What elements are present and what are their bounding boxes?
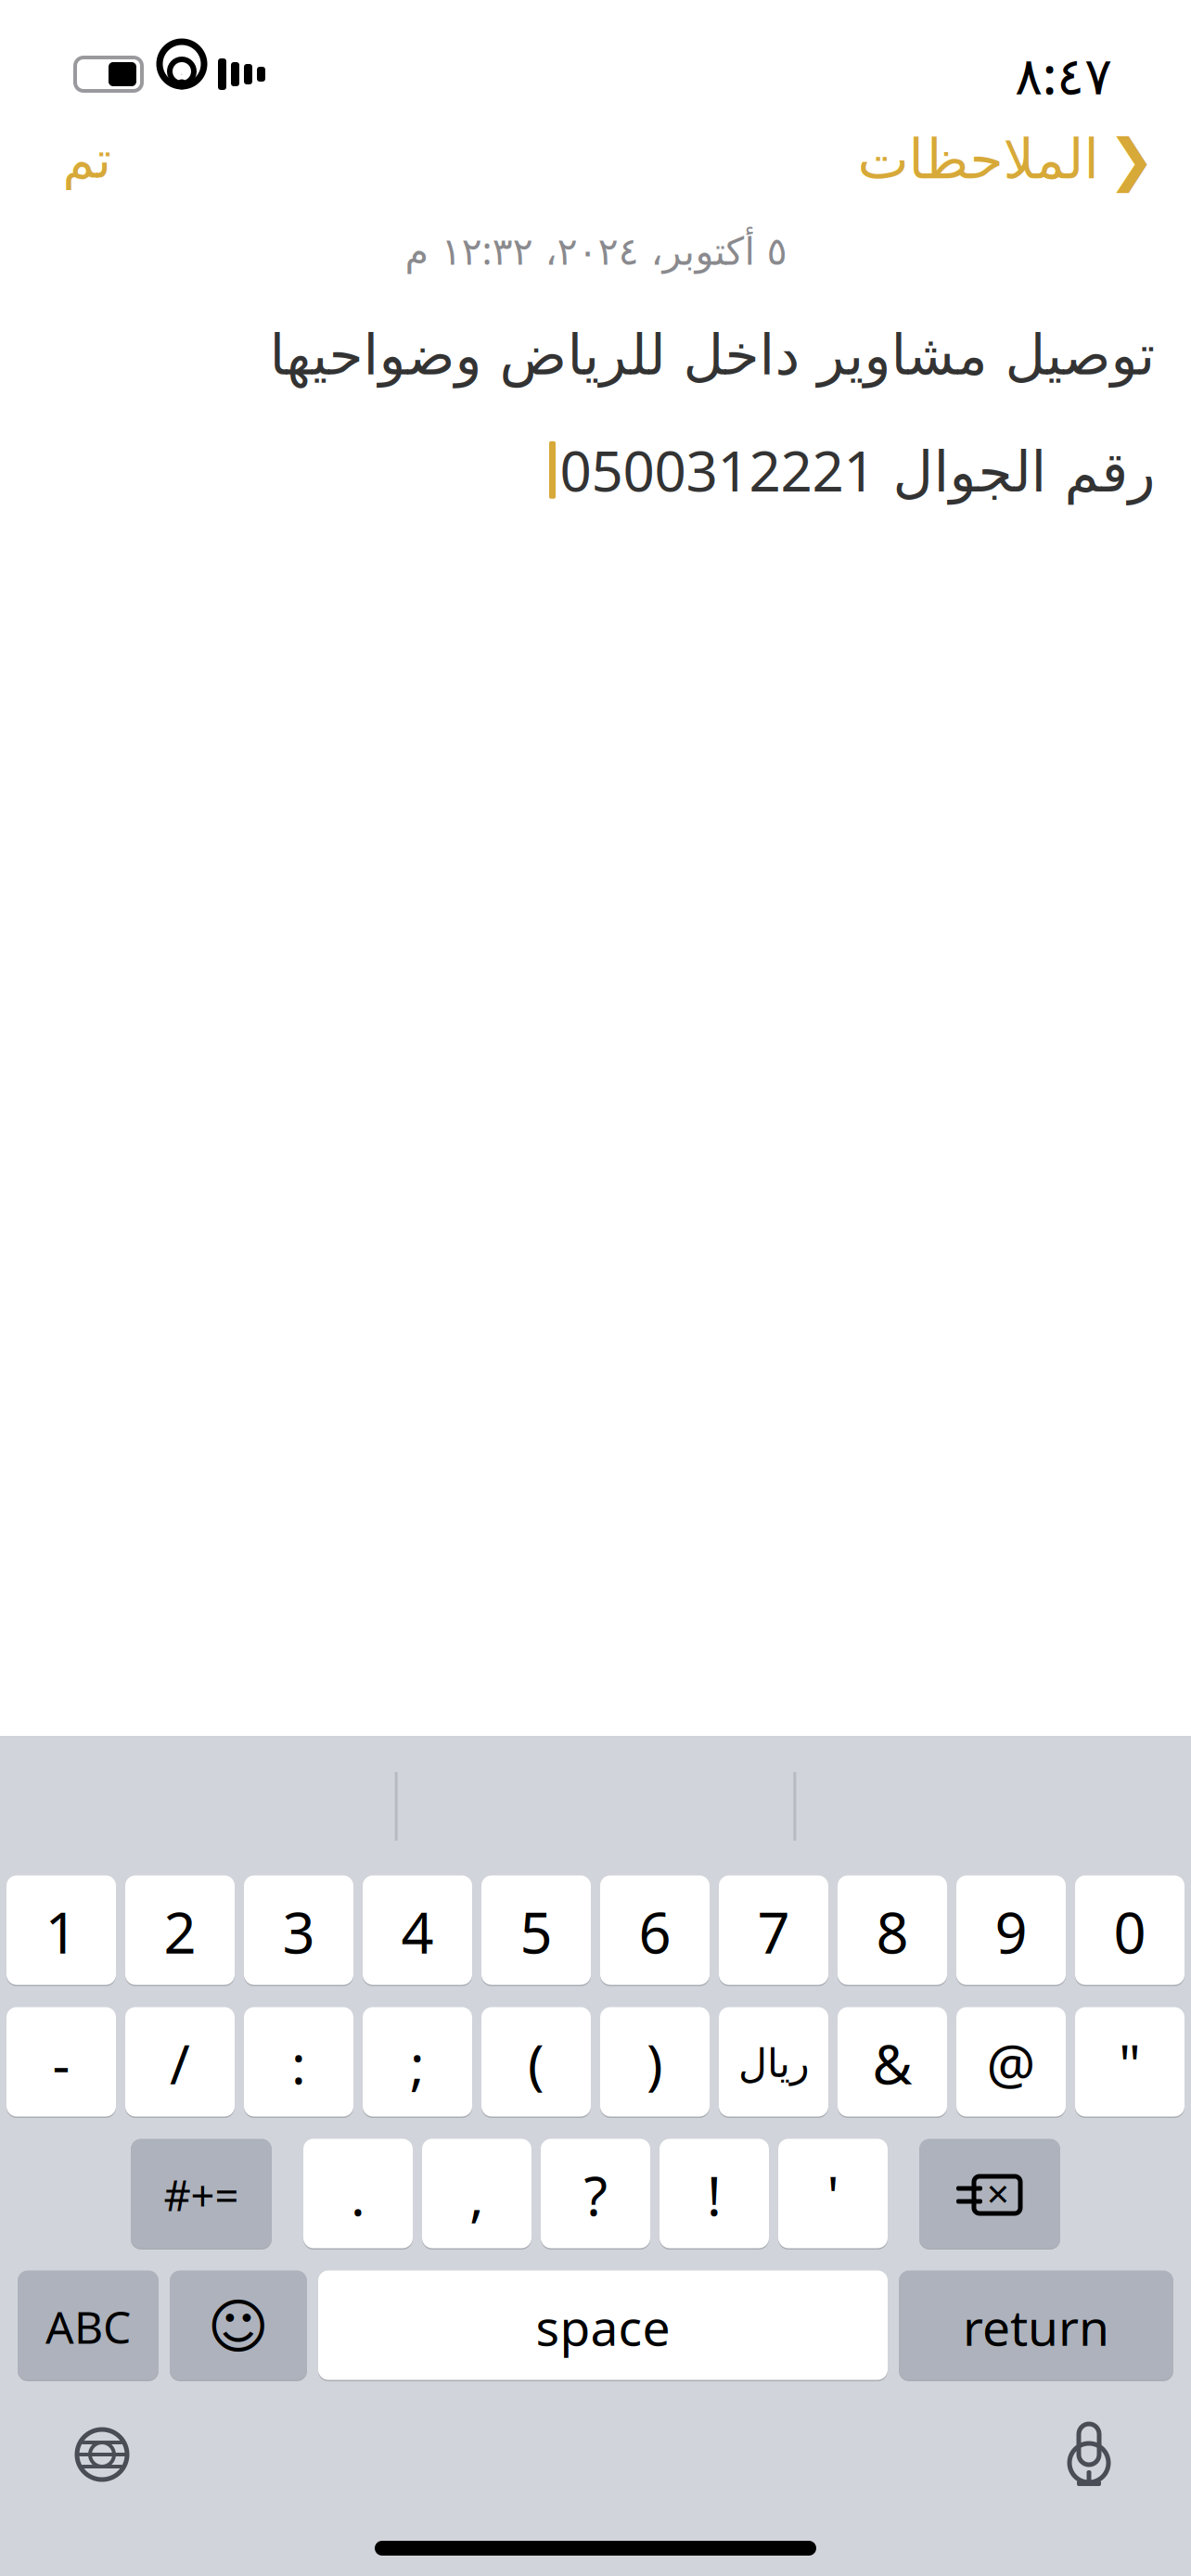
button[interactable]: , [422,2140,531,2250]
staticText: ' [827,2159,839,2231]
staticText: 5 [520,1894,552,1969]
staticText: 2 [164,1894,196,1969]
button[interactable]: ABC keyboard [18,2272,159,2381]
staticText: @ [986,2027,1036,2099]
button[interactable]: 1 [6,1877,116,1986]
staticText: ! [707,2159,722,2231]
staticText: . [351,2159,365,2231]
button[interactable]: & [838,2009,947,2118]
staticText: 4 [401,1894,434,1969]
staticText: - [52,2027,70,2099]
button[interactable]: - [6,2009,116,2118]
staticText: " [1119,2027,1141,2099]
button[interactable]: 4 [363,1877,472,1986]
button[interactable]: 5 [481,1877,591,1986]
staticText: ? [584,2159,607,2231]
staticText: رقم الجوال 0500312221 [559,433,1155,507]
staticText: الملاحظات [857,129,1098,190]
button[interactable]: 9 [956,1877,1066,1986]
button[interactable]: @ [956,2009,1066,2118]
staticText: , [469,2159,484,2231]
staticText: return [963,2294,1109,2359]
button[interactable]: ; [363,2009,472,2118]
button[interactable]: ! [660,2140,769,2250]
staticText: 3 [282,1894,315,1969]
staticText: 9 [995,1894,1027,1969]
button[interactable]: 3 [244,1877,353,1986]
staticText: ; [410,2027,425,2099]
button[interactable]: ( [481,2009,591,2118]
button[interactable]: Delete [919,2140,1060,2250]
staticText: space [536,2294,670,2359]
button[interactable]: ريال [719,2009,828,2118]
staticText: ريال [738,2041,809,2086]
staticText: توصيل مشاوير داخل للرياض وضواحيها [269,324,1155,387]
staticText: 0 [1114,1894,1146,1969]
button[interactable]: 8 [838,1877,947,1986]
button[interactable]: space [318,2272,888,2381]
staticText: 6 [639,1894,671,1969]
staticText: & [872,2027,912,2099]
staticText: 1 [45,1894,77,1969]
button[interactable]: الملاحظات [857,118,1155,201]
staticText: : [291,2027,306,2099]
button[interactable]: return [899,2272,1173,2381]
button[interactable]: " [1075,2009,1185,2118]
button[interactable]: #+= [131,2140,272,2250]
staticText: 8 [876,1894,909,1969]
staticText: ٨:٤٧ [1015,40,1112,109]
staticText: #+= [164,2167,239,2223]
staticText: ☺ [207,2293,269,2360]
staticText: ٥ أكتوبر، ٢٠٢٤، ١٢:٣٢ م [404,224,787,275]
button[interactable]: تم [44,121,130,198]
staticText: ❯ [1108,127,1155,192]
button[interactable]: 7 [719,1877,828,1986]
staticText: ) [647,2027,663,2099]
staticText: تم [62,130,111,189]
button[interactable]: ' [778,2140,888,2250]
staticText: ABC [45,2297,131,2356]
staticText: / [170,2027,190,2099]
button[interactable]: Next keyboard [51,2404,153,2506]
button[interactable]: 2 [125,1877,235,1986]
button[interactable]: . [303,2140,413,2250]
staticText: ( [528,2027,544,2099]
button[interactable]: ? [541,2140,650,2250]
button[interactable]: : [244,2009,353,2118]
staticText: ✕ [986,2178,1011,2212]
staticText: ◗ [181,73,182,75]
button[interactable]: ) [600,2009,710,2118]
button[interactable]: Dictation [1038,2404,1140,2506]
button[interactable]: Emoji [170,2272,307,2381]
button[interactable]: 6 [600,1877,710,1986]
staticText: 7 [757,1894,790,1969]
button[interactable]: / [125,2009,235,2118]
button[interactable]: 0 [1075,1877,1185,1986]
